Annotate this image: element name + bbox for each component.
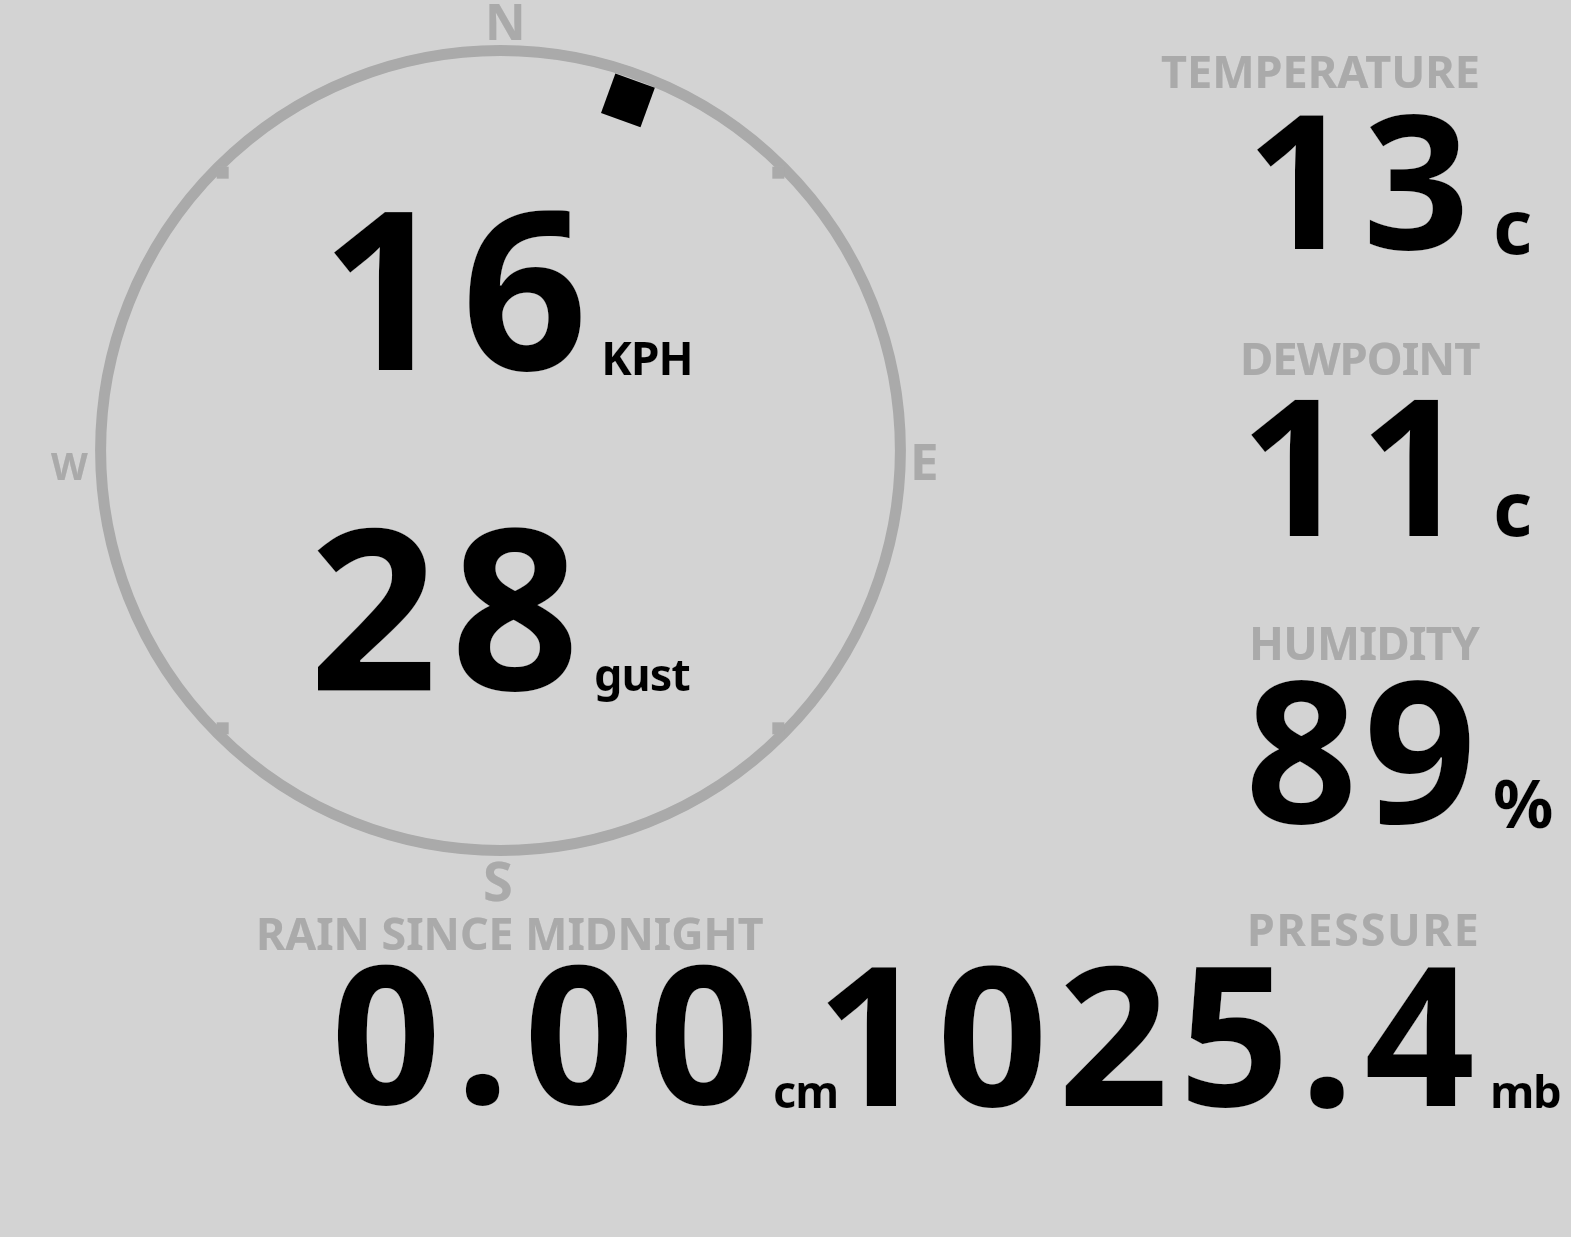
button[interactable]: Dewpoint 11 degrees Celsius — [1150, 320, 1571, 570]
button[interactable]: Humidity 89 percent — [1150, 600, 1571, 850]
staticText: 16 — [321, 134, 602, 435]
staticText: mb — [1490, 1059, 1561, 1121]
staticText: 0.00 — [331, 898, 774, 1160]
staticText: PRESSURE — [1247, 898, 1481, 959]
staticText: KPH — [601, 325, 693, 388]
staticText: S — [483, 843, 513, 917]
staticText: c — [1493, 455, 1533, 559]
staticText: c — [1493, 173, 1533, 277]
staticText: RAIN SINCE MIDNIGHT — [256, 902, 764, 963]
button[interactable]: Temperature 13 degrees Celsius — [1150, 30, 1571, 290]
staticText: 13 — [1246, 49, 1480, 304]
staticText: 89 — [1245, 612, 1483, 880]
staticText: 11 — [1240, 333, 1479, 592]
staticText: gust — [594, 643, 690, 704]
button[interactable]: Rain since midnight 0.00 cm — [240, 905, 840, 1120]
staticText: % — [1493, 756, 1554, 847]
button[interactable]: Wind direction and speed, 16 KPH gusting… — [94, 45, 906, 856]
staticText: DEWPOINT — [1240, 326, 1480, 388]
button[interactable]: Pressure 1025.4 mb — [845, 905, 1571, 1120]
staticText: W — [51, 439, 88, 491]
staticText: 1025.4 — [816, 899, 1486, 1163]
staticText: N — [485, 0, 526, 55]
staticText: E — [910, 425, 939, 494]
staticText: 28 — [309, 449, 593, 755]
staticText: TEMPERATURE — [1161, 40, 1480, 101]
staticText: HUMIDITY — [1249, 611, 1480, 673]
staticText: cm — [773, 1060, 839, 1121]
